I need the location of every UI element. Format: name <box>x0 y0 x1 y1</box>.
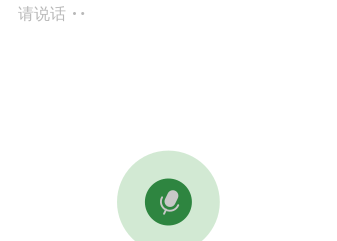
staticText: 请说话 <box>18 4 66 24</box>
button[interactable]: Record voice message <box>117 151 220 241</box>
